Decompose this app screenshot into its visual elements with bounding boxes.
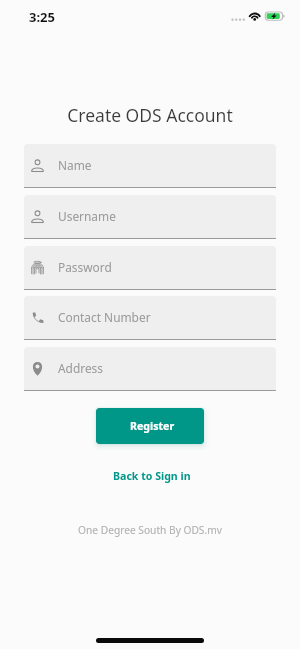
staticText: 3:25 [29, 8, 55, 26]
button[interactable]: Address [24, 347, 276, 391]
button[interactable]: Name [24, 144, 276, 188]
staticText: Name [58, 157, 92, 173]
button[interactable]: Username [24, 195, 276, 239]
button[interactable]: Register [96, 408, 204, 444]
staticText: Back to Sign in [113, 469, 191, 483]
other: Status icons [0, 0, 300, 34]
staticText: Address [58, 360, 103, 376]
button[interactable]: Back to Sign in [103, 464, 201, 488]
button[interactable]: Password [24, 246, 276, 290]
button[interactable]: Contact Number [24, 296, 276, 340]
staticText: One Degree South By ODS.mv [0, 523, 300, 537]
staticText: Register [130, 419, 175, 433]
staticText: Contact Number [58, 309, 151, 325]
staticText: Username [58, 208, 116, 224]
staticText: Create ODS Account [0, 103, 300, 127]
staticText: Password [58, 259, 112, 275]
